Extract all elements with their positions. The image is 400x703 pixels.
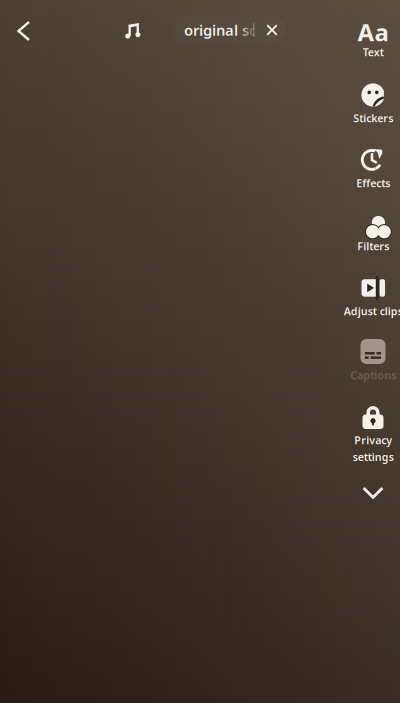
button[interactable]: Sounds bbox=[113, 12, 151, 50]
button[interactable]: Effects bbox=[330, 147, 400, 190]
staticText: original sound bbox=[184, 20, 285, 40]
staticText: Effects bbox=[356, 176, 390, 190]
staticText: Aa bbox=[357, 16, 388, 48]
button[interactable]: Collapse tools bbox=[330, 486, 400, 499]
button[interactable]: Privacy settings bbox=[330, 403, 400, 464]
staticText: Filters bbox=[357, 239, 389, 253]
staticText: Stickers bbox=[353, 111, 393, 125]
button[interactable]: Back bbox=[2, 9, 46, 53]
staticText: Privacy settings bbox=[352, 433, 393, 464]
button[interactable]: Aa bbox=[330, 23, 400, 59]
button[interactable]: Adjust clips bbox=[330, 276, 400, 318]
button[interactable]: Captions bbox=[330, 339, 400, 382]
button[interactable]: Stickers bbox=[330, 83, 400, 125]
staticText: Text bbox=[362, 45, 383, 59]
staticText: Adjust clips bbox=[343, 304, 400, 318]
button[interactable]: Filters bbox=[330, 212, 400, 253]
button[interactable]: original sound bbox=[172, 15, 286, 45]
staticText: Captions bbox=[350, 368, 396, 382]
